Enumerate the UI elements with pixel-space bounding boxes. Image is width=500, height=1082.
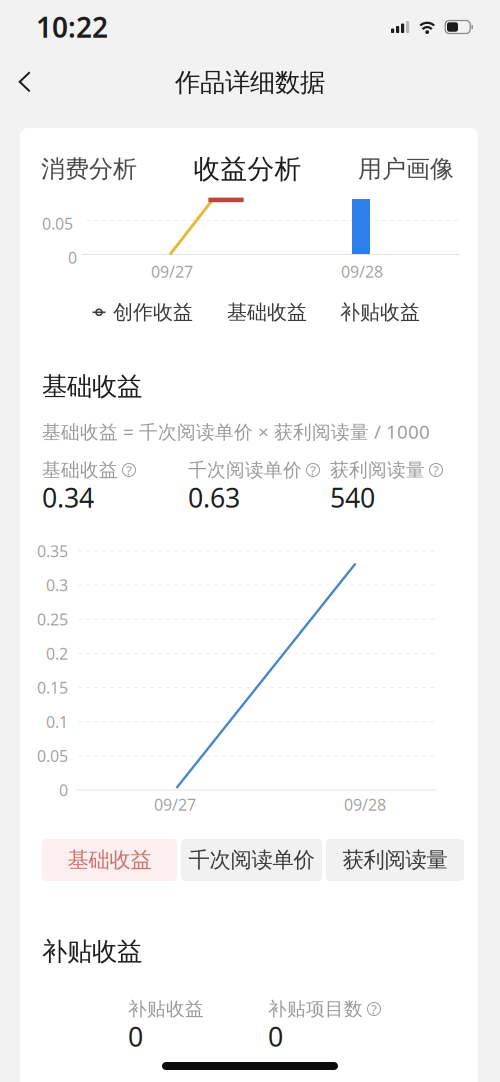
staticText: 540 <box>330 480 375 515</box>
staticText: 0 <box>68 247 77 268</box>
staticText: 0.63 <box>188 480 240 515</box>
button[interactable]: 收益分析 <box>193 143 301 195</box>
staticText: 获利阅读量 <box>342 847 447 873</box>
staticText: 补贴收益 <box>128 997 204 1020</box>
staticText: 0.05 <box>42 213 73 234</box>
staticText: 基础收益 = 千次阅读单价 × 获利阅读量 / 1000 <box>42 419 430 444</box>
staticText: 0.05 <box>37 745 68 766</box>
button[interactable]: 基础收益 <box>42 839 177 881</box>
staticText: 0.15 <box>37 677 68 698</box>
staticText: 千次阅读单价 <box>188 847 314 873</box>
staticText: 0.34 <box>42 480 94 515</box>
staticText: 10:22 <box>36 8 108 46</box>
staticText: 09/27 <box>154 794 196 815</box>
staticText: 获利阅读量 <box>330 458 425 481</box>
staticText: 09/27 <box>151 261 193 282</box>
staticText: 09/28 <box>344 794 386 815</box>
staticText: 补贴收益 <box>42 936 142 967</box>
staticText: 基础收益 <box>67 847 151 873</box>
staticText: ? <box>310 461 316 479</box>
button[interactable]: 用户画像 <box>358 144 454 194</box>
staticText: ? <box>126 461 132 479</box>
button[interactable]: 消费分析 <box>41 144 137 194</box>
staticText: 基础收益 <box>227 300 307 325</box>
staticText: 09/28 <box>341 261 383 282</box>
staticText: 0 <box>268 1019 283 1054</box>
staticText: 0 <box>128 1019 143 1054</box>
staticText: 0.1 <box>46 711 68 732</box>
staticText: 基础收益 <box>42 458 118 481</box>
button[interactable]: 获利阅读量 <box>326 839 464 881</box>
staticText: 0.2 <box>46 643 68 664</box>
staticText: ? <box>433 461 439 479</box>
staticText: 补贴收益 <box>340 300 420 325</box>
staticText: 用户画像 <box>358 154 454 184</box>
staticText: 补贴项目数 <box>268 997 363 1020</box>
staticText: ? <box>371 1000 377 1018</box>
staticText: 作品详细数据 <box>175 67 325 98</box>
staticText: 千次阅读单价 <box>188 458 302 481</box>
staticText: 0 <box>59 779 68 801</box>
staticText: 创作收益 <box>113 300 193 325</box>
button[interactable]: Back <box>3 60 47 104</box>
staticText: 0.25 <box>37 609 68 630</box>
button[interactable]: 千次阅读单价 <box>181 839 322 881</box>
staticText: 0.3 <box>46 574 68 596</box>
staticText: 消费分析 <box>41 154 137 184</box>
staticText: 收益分析 <box>193 153 301 185</box>
staticText: 0.35 <box>37 540 68 562</box>
staticText: 基础收益 <box>42 371 142 402</box>
